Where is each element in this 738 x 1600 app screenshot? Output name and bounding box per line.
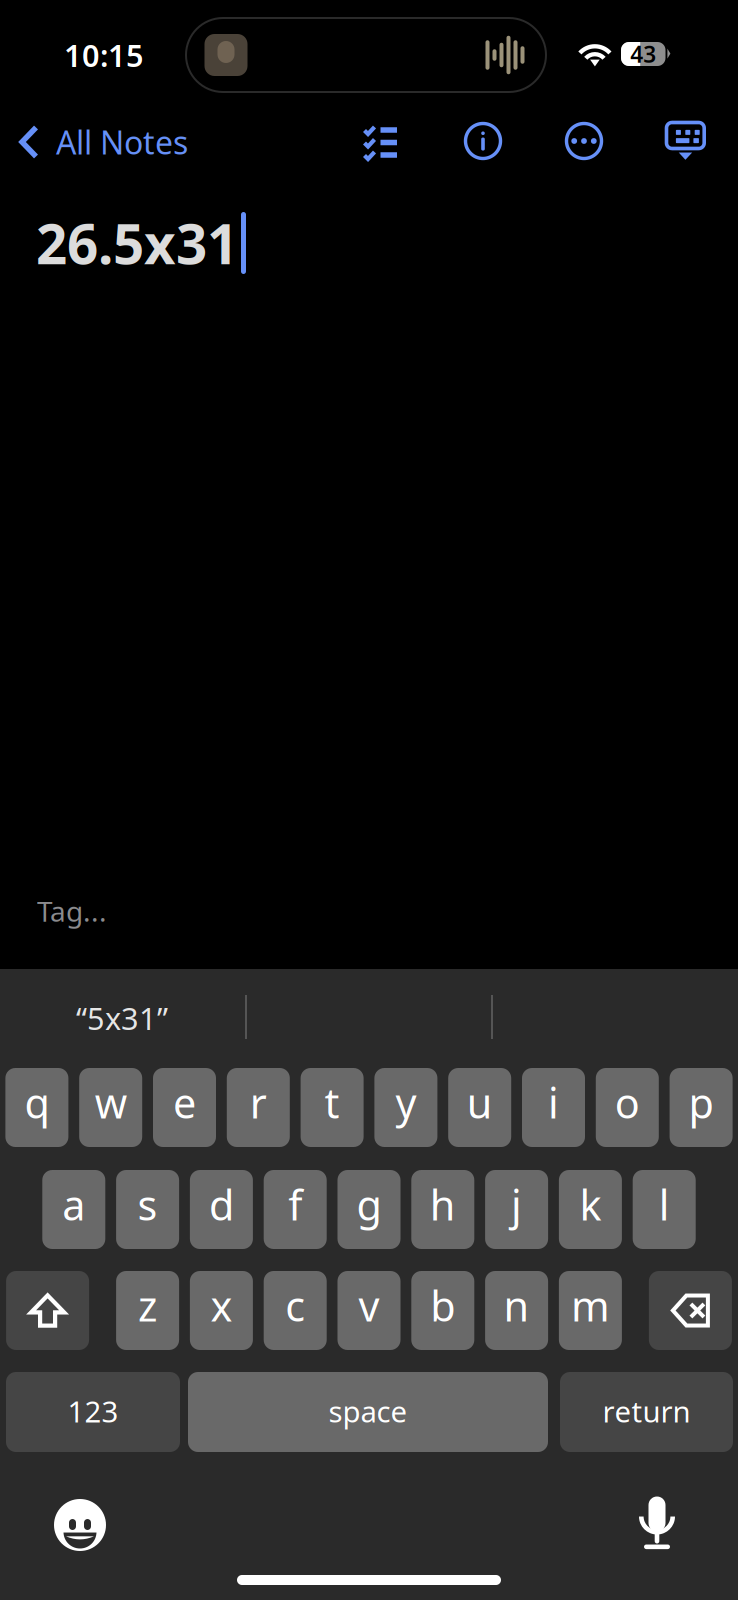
button[interactable]: s <box>116 1170 179 1249</box>
button[interactable]: return <box>560 1372 733 1452</box>
button[interactable]: Delete <box>649 1271 732 1350</box>
button[interactable]: k <box>559 1170 622 1249</box>
button[interactable]: c <box>264 1271 327 1350</box>
button[interactable]: All Notes <box>8 105 202 179</box>
staticText: return <box>602 1391 690 1430</box>
staticText: o <box>615 1075 640 1130</box>
staticText: c <box>285 1278 305 1333</box>
staticText: d <box>209 1177 234 1232</box>
staticText: p <box>689 1075 714 1130</box>
staticText: e <box>173 1075 196 1130</box>
staticText: g <box>356 1177 381 1232</box>
button[interactable]: t <box>301 1068 364 1147</box>
button[interactable]: r <box>227 1068 290 1147</box>
staticText: j <box>511 1177 522 1232</box>
button[interactable]: More <box>546 104 622 178</box>
staticText: Tag... <box>37 892 107 930</box>
button[interactable]: e <box>153 1068 216 1147</box>
button[interactable]: n <box>485 1271 548 1350</box>
button[interactable]: z <box>116 1271 179 1350</box>
button[interactable]: Shift <box>6 1271 89 1350</box>
button[interactable]: Hide Keyboard <box>647 104 723 178</box>
staticText: l <box>659 1177 670 1232</box>
button[interactable]: u <box>448 1068 511 1147</box>
button[interactable]: l <box>633 1170 696 1249</box>
staticText: z <box>138 1278 157 1333</box>
staticText: All Notes <box>56 121 188 163</box>
button[interactable]: b <box>411 1271 474 1350</box>
button[interactable]: q <box>5 1068 68 1147</box>
staticText: “5x31” <box>76 998 168 1038</box>
staticText: 123 <box>67 1391 118 1430</box>
staticText: b <box>430 1278 455 1333</box>
button[interactable]: a <box>42 1170 105 1249</box>
staticText: f <box>288 1177 302 1232</box>
staticText: 26.5x31 <box>36 207 238 279</box>
staticText: m <box>571 1278 610 1333</box>
staticText: u <box>467 1075 493 1130</box>
button[interactable]: Checklist <box>343 104 419 178</box>
staticText: space <box>328 1391 407 1430</box>
button[interactable]: Emoji <box>42 1487 118 1563</box>
staticText: h <box>430 1177 456 1232</box>
button[interactable]: y <box>374 1068 437 1147</box>
button[interactable]: m <box>559 1271 622 1350</box>
staticText: y <box>395 1075 416 1130</box>
button[interactable]: p <box>670 1068 733 1147</box>
button[interactable]: g <box>337 1170 400 1249</box>
button[interactable]: j <box>485 1170 548 1249</box>
staticText: q <box>24 1075 49 1130</box>
staticText: k <box>579 1177 601 1232</box>
button[interactable]: i <box>522 1068 585 1147</box>
staticText: i <box>548 1075 559 1130</box>
button[interactable]: space <box>188 1372 548 1452</box>
staticText: n <box>504 1278 530 1333</box>
staticText: x <box>210 1278 232 1333</box>
staticText: t <box>325 1075 340 1130</box>
button[interactable]: Note Info <box>445 104 521 178</box>
button[interactable]: w <box>79 1068 142 1147</box>
button[interactable]: o <box>596 1068 659 1147</box>
button[interactable]: Dictate <box>619 1485 695 1561</box>
button[interactable]: f <box>264 1170 327 1249</box>
staticText: 10:15 <box>64 35 144 75</box>
staticText: r <box>250 1075 267 1130</box>
staticText: 43 <box>630 39 656 69</box>
button[interactable]: d <box>190 1170 253 1249</box>
staticText: s <box>138 1177 158 1232</box>
staticText: v <box>358 1278 379 1333</box>
button[interactable]: 123 <box>6 1372 180 1452</box>
staticText: a <box>62 1177 85 1232</box>
button[interactable]: v <box>337 1271 400 1350</box>
button[interactable]: h <box>411 1170 474 1249</box>
button[interactable]: x <box>190 1271 253 1350</box>
staticText: w <box>95 1075 127 1130</box>
